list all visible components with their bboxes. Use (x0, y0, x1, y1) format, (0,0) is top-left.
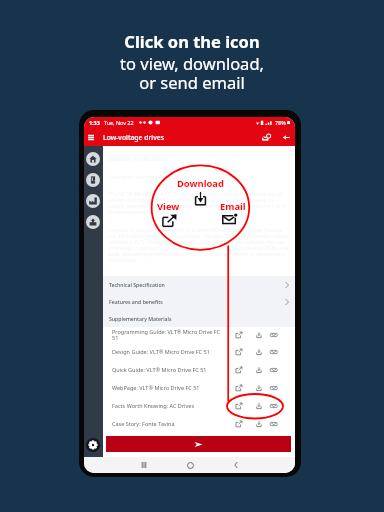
staticText: Programming Guide: VLT® Micro Drive FC 5… (112, 328, 231, 342)
button[interactable]: Download (254, 383, 263, 392)
staticText: Click on the icon (124, 30, 260, 52)
button[interactable]: View (234, 401, 243, 410)
staticText: Facts Worth Knowing: AC Drives (112, 402, 231, 409)
button[interactable]: Email (269, 330, 278, 339)
staticText: Industry Applications (108, 155, 167, 162)
staticText: Tue, Nov 22 (104, 119, 134, 126)
staticText: Low-voltage drives (103, 133, 164, 142)
staticText: Download (177, 177, 224, 190)
button[interactable]: Download (254, 419, 263, 428)
staticText: Quick Guide: VLT® Micro Drive FC 51 (112, 366, 231, 373)
button[interactable]: Email (269, 347, 278, 356)
button[interactable]: Case Story: Fonte Tavina (112, 414, 278, 432)
button[interactable]: Design Guide: VLT® Micro Drive FC 51 (112, 342, 278, 360)
button[interactable]: WebPage: VLT® Micro Drive FC 51 (112, 378, 278, 396)
staticText: Case Story: Fonte Tavina (112, 420, 231, 427)
button[interactable]: Download (254, 330, 263, 339)
staticText: Maximum energy efficiency (108, 173, 180, 180)
button[interactable]: Open navigation menu (84, 128, 98, 146)
button[interactable]: Email (269, 401, 278, 410)
button[interactable]: View (234, 347, 243, 356)
staticText: Supplementary Materials (109, 315, 172, 322)
button[interactable]: View (234, 419, 243, 428)
staticText: to view, download, or send email (120, 52, 264, 94)
button[interactable]: Quick Guide: VLT® Micro Drive FC 51 (112, 360, 278, 378)
button[interactable]: Download (254, 401, 263, 410)
button[interactable]: Technical Specification (109, 276, 289, 293)
button[interactable]: Email (269, 383, 278, 392)
button[interactable]: Email (269, 419, 278, 428)
button[interactable]: View (234, 330, 243, 339)
button[interactable]: Home (183, 458, 197, 472)
button[interactable]: Features and benefits (109, 293, 289, 310)
staticText: Despite its compact footprint, the drive… (108, 226, 291, 264)
button[interactable]: Facts Worth Knowing: AC Drives (112, 396, 278, 414)
staticText: Design Guide: VLT® Micro Drive FC 51 (112, 348, 231, 355)
button[interactable]: Email (269, 365, 278, 374)
staticText: 78% (275, 119, 286, 126)
staticText: WebPage: VLT® Micro Drive FC 51 (112, 384, 231, 391)
staticText: View (157, 200, 180, 213)
button[interactable]: Send (106, 436, 291, 452)
button[interactable]: Download (254, 365, 263, 374)
button[interactable]: Back (280, 131, 292, 143)
button[interactable]: Download (254, 347, 263, 356)
button[interactable]: Programming Guide: VLT® Micro Drive FC 5… (112, 327, 278, 342)
button[interactable]: Settings (86, 438, 100, 452)
button[interactable]: View (234, 383, 243, 392)
button[interactable]: Industry (86, 194, 100, 208)
button[interactable]: Recents (137, 458, 151, 472)
staticText: Technical Specification (109, 281, 165, 288)
staticText: The VLT® Micro Drive FC 51 delivers exce… (108, 190, 291, 216)
staticText: 1:33 (89, 119, 100, 126)
button[interactable]: Home (86, 152, 100, 166)
button[interactable]: View (234, 365, 243, 374)
button[interactable]: Documents (86, 173, 100, 187)
button[interactable]: Back (229, 458, 243, 472)
staticText: Features and benefits (109, 298, 163, 305)
button[interactable]: Downloads (86, 215, 100, 229)
staticText: Email (220, 200, 246, 213)
button[interactable]: Messages (259, 130, 273, 144)
